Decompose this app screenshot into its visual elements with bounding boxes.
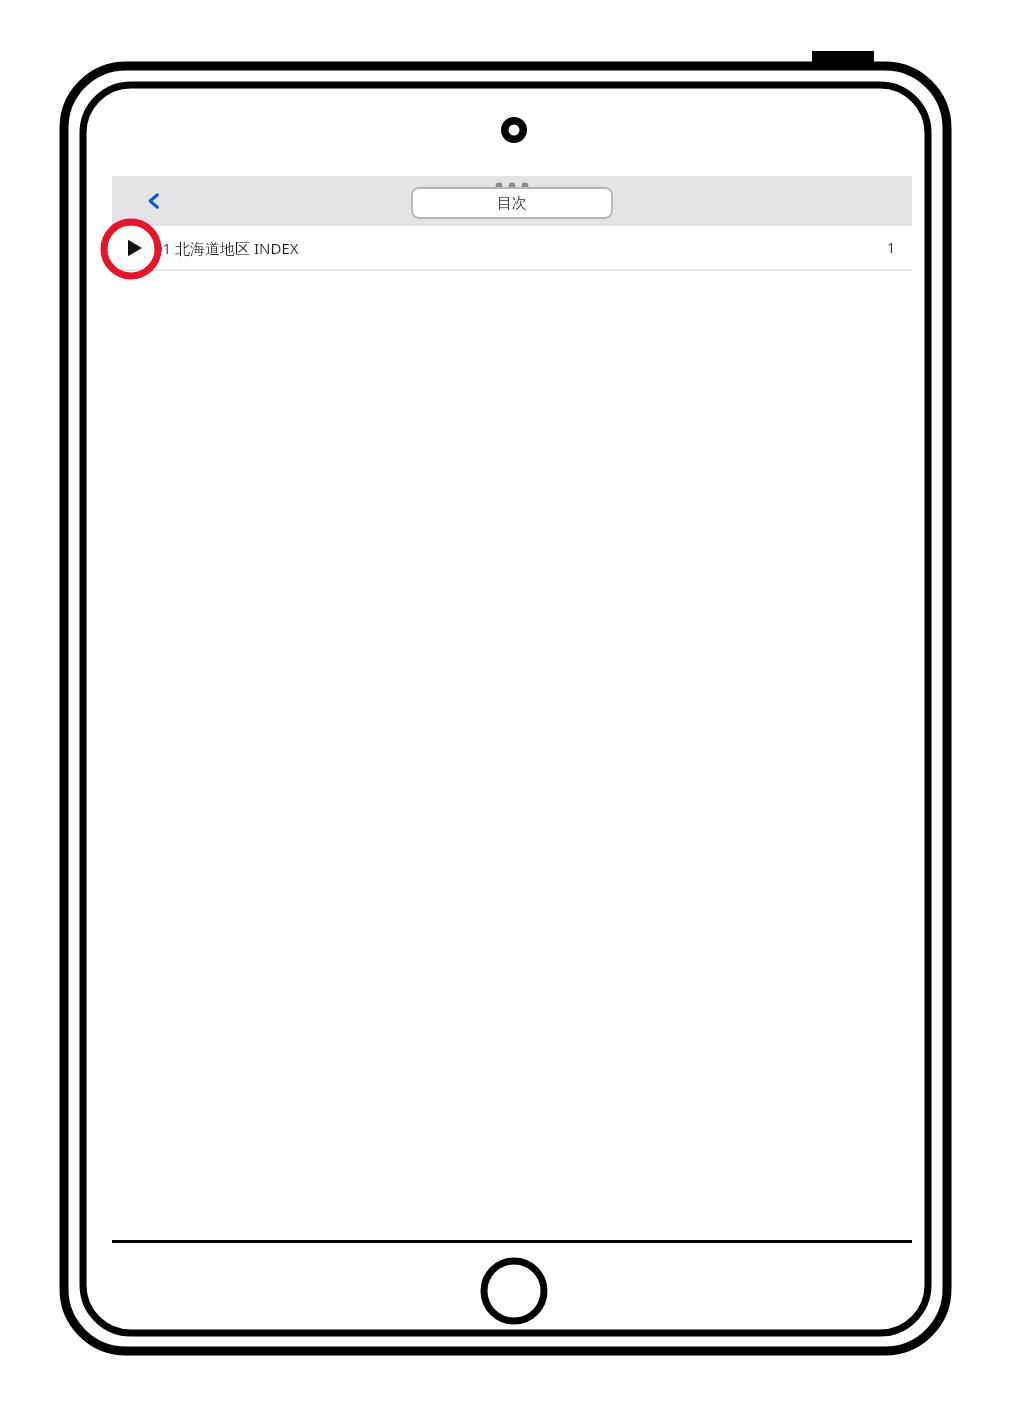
staticText: 1 xyxy=(886,238,895,257)
button[interactable]: Back xyxy=(132,179,176,223)
button[interactable]: 目次 xyxy=(412,188,612,218)
button[interactable]: 01 北海道地区 INDEX xyxy=(112,226,912,269)
staticText: 目次 xyxy=(497,194,527,213)
staticText: 01 北海道地区 INDEX xyxy=(154,238,886,258)
